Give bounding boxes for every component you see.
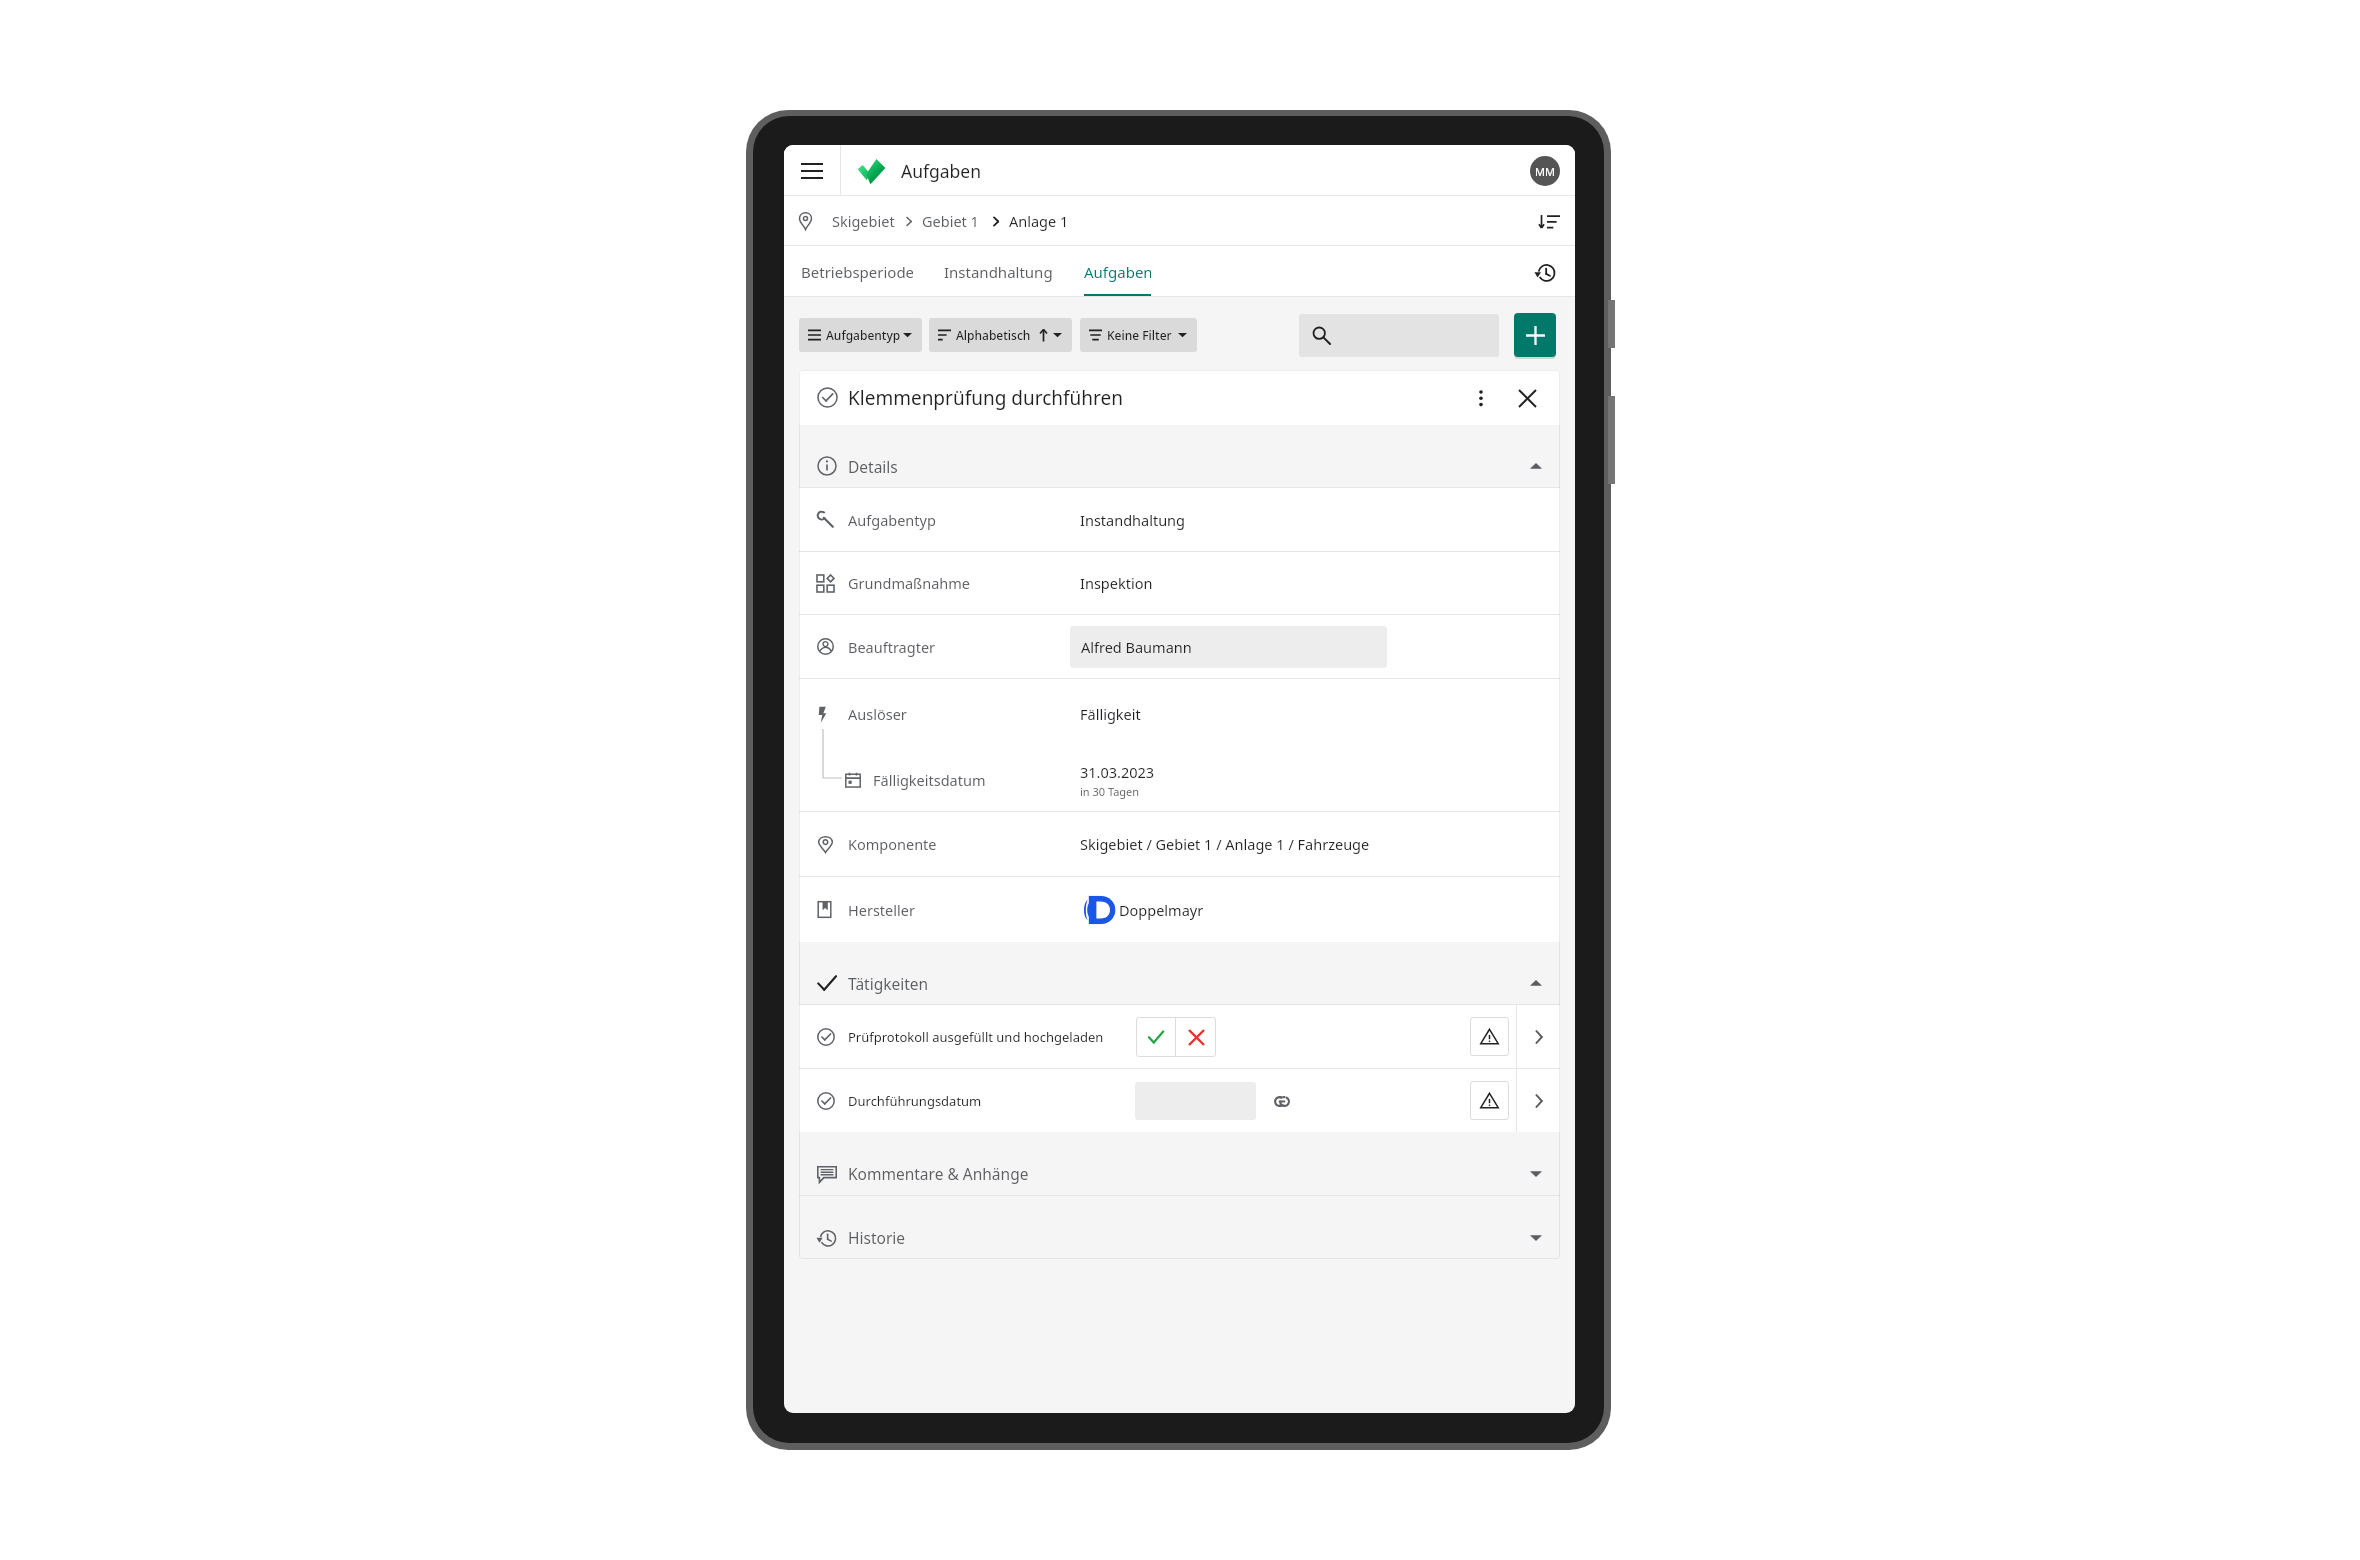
button[interactable]: Komponente [799, 812, 1560, 876]
staticText: Gebiet 1 [922, 211, 979, 231]
staticText: Komponente [848, 834, 937, 854]
button[interactable]: Historie [799, 1196, 1560, 1259]
staticText: Instandhaltung [1080, 510, 1185, 530]
button[interactable]: Yes [1136, 1017, 1175, 1057]
button[interactable]: Aufgabentyp [799, 318, 922, 352]
button[interactable]: Keine Filter [1080, 318, 1197, 352]
button[interactable]: Gebiet 1 [922, 211, 979, 231]
button[interactable]: Account [1530, 156, 1560, 186]
staticText: Alphabetisch [956, 327, 1031, 343]
button[interactable]: Skigebiet [832, 211, 895, 231]
button[interactable]: No [1176, 1017, 1216, 1057]
button[interactable]: Tätigkeiten [799, 942, 1560, 1004]
button[interactable]: Instandhaltung [944, 246, 1052, 297]
button[interactable]: Durchführungsdatum [799, 1069, 1516, 1132]
button[interactable]: Beauftragter [799, 615, 1560, 678]
staticText: Instandhaltung [944, 262, 1052, 282]
staticText: Anlage 1 [1009, 211, 1069, 231]
button[interactable]: Add [1514, 313, 1556, 357]
button[interactable]: Klemmenprüfung durchführen [799, 370, 1560, 425]
staticText: Alfred Baumann [1081, 637, 1192, 657]
button[interactable]: Search [1299, 314, 1499, 357]
staticText: Grundmaßnahme [848, 573, 971, 593]
button[interactable]: Open details [1517, 1005, 1560, 1068]
staticText: Aufgabentyp [848, 510, 936, 530]
staticText: MM [1535, 164, 1555, 179]
button[interactable]: Open details [1517, 1069, 1560, 1132]
staticText: Betriebsperiode [801, 262, 913, 282]
button[interactable]: Sort [1532, 204, 1566, 238]
staticText: Kommentare & Anhänge [848, 1163, 1029, 1184]
button[interactable]: Hersteller [799, 877, 1560, 942]
button[interactable]: Alphabetisch [929, 318, 1072, 352]
button[interactable]: Close [1512, 383, 1542, 413]
staticText: Prüfprotokoll ausgefüllt und hochgeladen [848, 1028, 1104, 1046]
staticText: Fälligkeitsdatum [873, 770, 986, 790]
staticText: Keine Filter [1107, 327, 1172, 343]
staticText: Doppelmayr [1119, 900, 1204, 920]
staticText: Klemmenprüfung durchführen [848, 385, 1123, 411]
staticText: Skigebiet [832, 211, 895, 231]
button[interactable]: Aufgaben [1084, 246, 1151, 297]
staticText: Durchführungsdatum [848, 1092, 982, 1110]
button[interactable]: Details [799, 425, 1560, 487]
staticText: Auslöser [848, 704, 907, 724]
staticText: Fälligkeit [1080, 704, 1141, 724]
staticText: Aufgabentyp [826, 327, 901, 343]
button[interactable]: Grundmaßnahme [799, 552, 1560, 614]
button[interactable]: Warning [1470, 1017, 1509, 1056]
button[interactable]: Aufgabentyp [799, 488, 1560, 551]
button[interactable]: Prüfprotokoll ausgefüllt und hochgeladen [799, 1005, 1516, 1068]
staticText: in 30 Tagen [1080, 784, 1140, 799]
button[interactable]: Kommentare & Anhänge [799, 1132, 1560, 1195]
button[interactable]: History [1529, 256, 1561, 288]
button[interactable]: Anlage 1 [1009, 211, 1069, 231]
button[interactable]: Auslöser [799, 679, 1560, 749]
button[interactable]: Fälligkeitsdatum [799, 749, 1560, 811]
button[interactable]: Menu [784, 145, 840, 196]
staticText: Skigebiet / Gebiet 1 / Anlage 1 / Fahrze… [1080, 834, 1370, 854]
staticText: Inspektion [1080, 573, 1153, 593]
button[interactable]: Warning [1470, 1081, 1509, 1120]
staticText: Beauftragter [848, 637, 936, 657]
staticText: Aufgaben [901, 159, 982, 183]
button[interactable]: More options [1466, 383, 1496, 413]
button[interactable]: Link [1270, 1089, 1294, 1113]
button[interactable]: Betriebsperiode [801, 246, 913, 297]
staticText: Hersteller [848, 900, 915, 920]
staticText: Details [848, 456, 898, 477]
staticText: Aufgaben [1084, 262, 1151, 282]
staticText: 31.03.2023 [1080, 762, 1155, 782]
staticText: Tätigkeiten [848, 973, 929, 994]
staticText: Historie [848, 1227, 906, 1248]
